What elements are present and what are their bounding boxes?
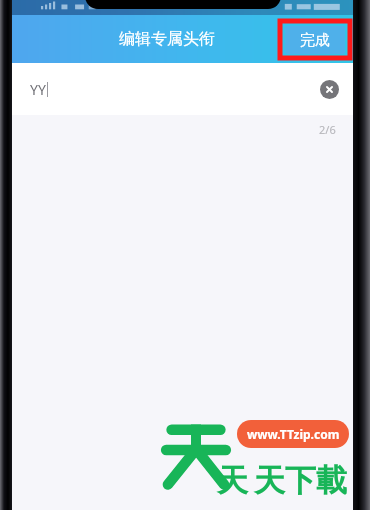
staticText: www.TTzip.com (247, 426, 340, 442)
button[interactable]: YY (12, 63, 353, 115)
staticText: 天下載 (254, 461, 347, 500)
staticText: 天 (217, 461, 248, 500)
staticText: 2/6 (319, 122, 336, 137)
staticText: 编辑专属头衔 (119, 29, 215, 49)
button[interactable]: Clear text (320, 80, 339, 99)
staticText: YY (30, 80, 46, 99)
staticText: 完成 (300, 31, 330, 50)
button[interactable]: 完成 (285, 26, 345, 54)
